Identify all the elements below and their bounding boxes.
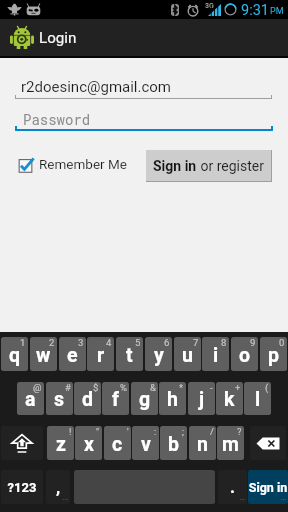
staticText: "	[96, 426, 100, 437]
button[interactable]: c	[104, 426, 131, 460]
staticText: v	[141, 433, 151, 456]
staticText: y	[154, 344, 164, 367]
staticText: d	[82, 388, 93, 411]
button[interactable]: t	[116, 337, 143, 371]
staticText: 2	[49, 337, 55, 348]
button[interactable]: m	[217, 426, 244, 460]
staticText: Login	[39, 29, 77, 47]
button[interactable]: o	[231, 337, 258, 371]
staticText: ···	[63, 495, 68, 502]
staticText: !	[69, 426, 72, 437]
staticText: r	[97, 344, 105, 367]
staticText: 0	[279, 337, 285, 348]
button[interactable]: p	[260, 337, 287, 371]
staticText: Password	[23, 110, 91, 128]
button[interactable]: z	[47, 426, 74, 460]
staticText: g	[139, 388, 151, 411]
button[interactable]: Remember Me	[16, 151, 127, 177]
staticText: *	[179, 382, 184, 393]
staticText: i	[213, 344, 219, 367]
button[interactable]: l	[244, 382, 271, 415]
staticText: t	[126, 344, 133, 367]
staticText: 4	[106, 337, 112, 348]
button[interactable]: ?123	[1, 470, 43, 504]
staticText: q	[9, 344, 21, 367]
staticText: &	[150, 382, 156, 393]
button[interactable]: q	[1, 337, 28, 371]
button[interactable]: .	[218, 470, 247, 504]
button[interactable]: v	[132, 426, 159, 460]
staticText: 9	[250, 337, 256, 348]
staticText: f	[112, 388, 119, 411]
staticText: Remember Me	[39, 156, 127, 172]
staticText: p	[268, 344, 279, 367]
staticText: ?123	[1, 480, 43, 495]
staticText: ···	[240, 495, 245, 502]
button[interactable]: b	[160, 426, 187, 460]
staticText: Sign in	[153, 158, 197, 174]
staticText: b	[168, 433, 179, 456]
staticText: or register	[197, 158, 264, 174]
staticText: 3G	[205, 2, 214, 10]
staticText: x	[84, 433, 94, 456]
button[interactable]: y	[145, 337, 172, 371]
staticText: 7	[193, 337, 199, 348]
staticText: @	[33, 382, 42, 393]
staticText: a	[25, 388, 36, 411]
button[interactable]: a	[17, 382, 44, 415]
staticText: c	[112, 433, 123, 456]
button[interactable]: x	[75, 426, 102, 460]
staticText: w	[36, 344, 51, 367]
staticText: e	[67, 344, 78, 367]
staticText: u	[182, 344, 193, 367]
staticText: n	[197, 433, 208, 456]
button[interactable]: Sign in	[146, 150, 271, 181]
staticText: ;	[182, 426, 185, 437]
button[interactable]: e	[59, 337, 86, 371]
staticText: ···	[281, 495, 286, 502]
button[interactable]: Backspace	[250, 426, 286, 460]
staticText: Sign in	[248, 480, 288, 495]
staticText: -	[210, 382, 213, 393]
button[interactable]: f	[102, 382, 129, 415]
staticText: 6	[164, 337, 170, 348]
staticText: .	[218, 477, 247, 497]
button[interactable]: h	[159, 382, 186, 415]
button[interactable]: k	[216, 382, 243, 415]
button[interactable]: Shift	[1, 426, 43, 460]
staticText: z	[56, 433, 66, 456]
staticText: :	[154, 426, 157, 437]
staticText: (	[265, 382, 269, 393]
staticText: /	[210, 426, 214, 437]
staticText: #	[65, 382, 71, 393]
staticText: l	[255, 388, 261, 411]
button[interactable]: Sign in	[248, 470, 288, 504]
button[interactable]: ,	[46, 470, 70, 504]
staticText: '	[127, 426, 129, 437]
staticText: $	[93, 382, 99, 393]
button[interactable]: d	[74, 382, 101, 415]
staticText: s	[54, 388, 65, 411]
button[interactable]: n	[189, 426, 216, 460]
staticText: r2doesinc@gmail.com	[21, 78, 172, 96]
button[interactable]: g	[131, 382, 158, 415]
staticText: PM	[270, 6, 284, 17]
button[interactable]: w	[30, 337, 57, 371]
staticText: ,	[46, 477, 70, 497]
staticText: 1	[20, 337, 26, 348]
button[interactable]: u	[174, 337, 201, 371]
staticText: h	[167, 388, 178, 411]
staticText: 3	[78, 337, 84, 348]
staticText: k	[224, 388, 235, 411]
staticText: %	[120, 382, 127, 393]
staticText: 8	[221, 337, 227, 348]
button[interactable]: s	[46, 382, 73, 415]
staticText: 5	[135, 337, 141, 348]
button[interactable]: j	[188, 382, 215, 415]
button[interactable]: r	[87, 337, 114, 371]
button[interactable]: i	[202, 337, 229, 371]
staticText: 9:31	[241, 2, 269, 19]
staticText: ?	[237, 426, 242, 437]
staticText: j	[199, 388, 205, 411]
